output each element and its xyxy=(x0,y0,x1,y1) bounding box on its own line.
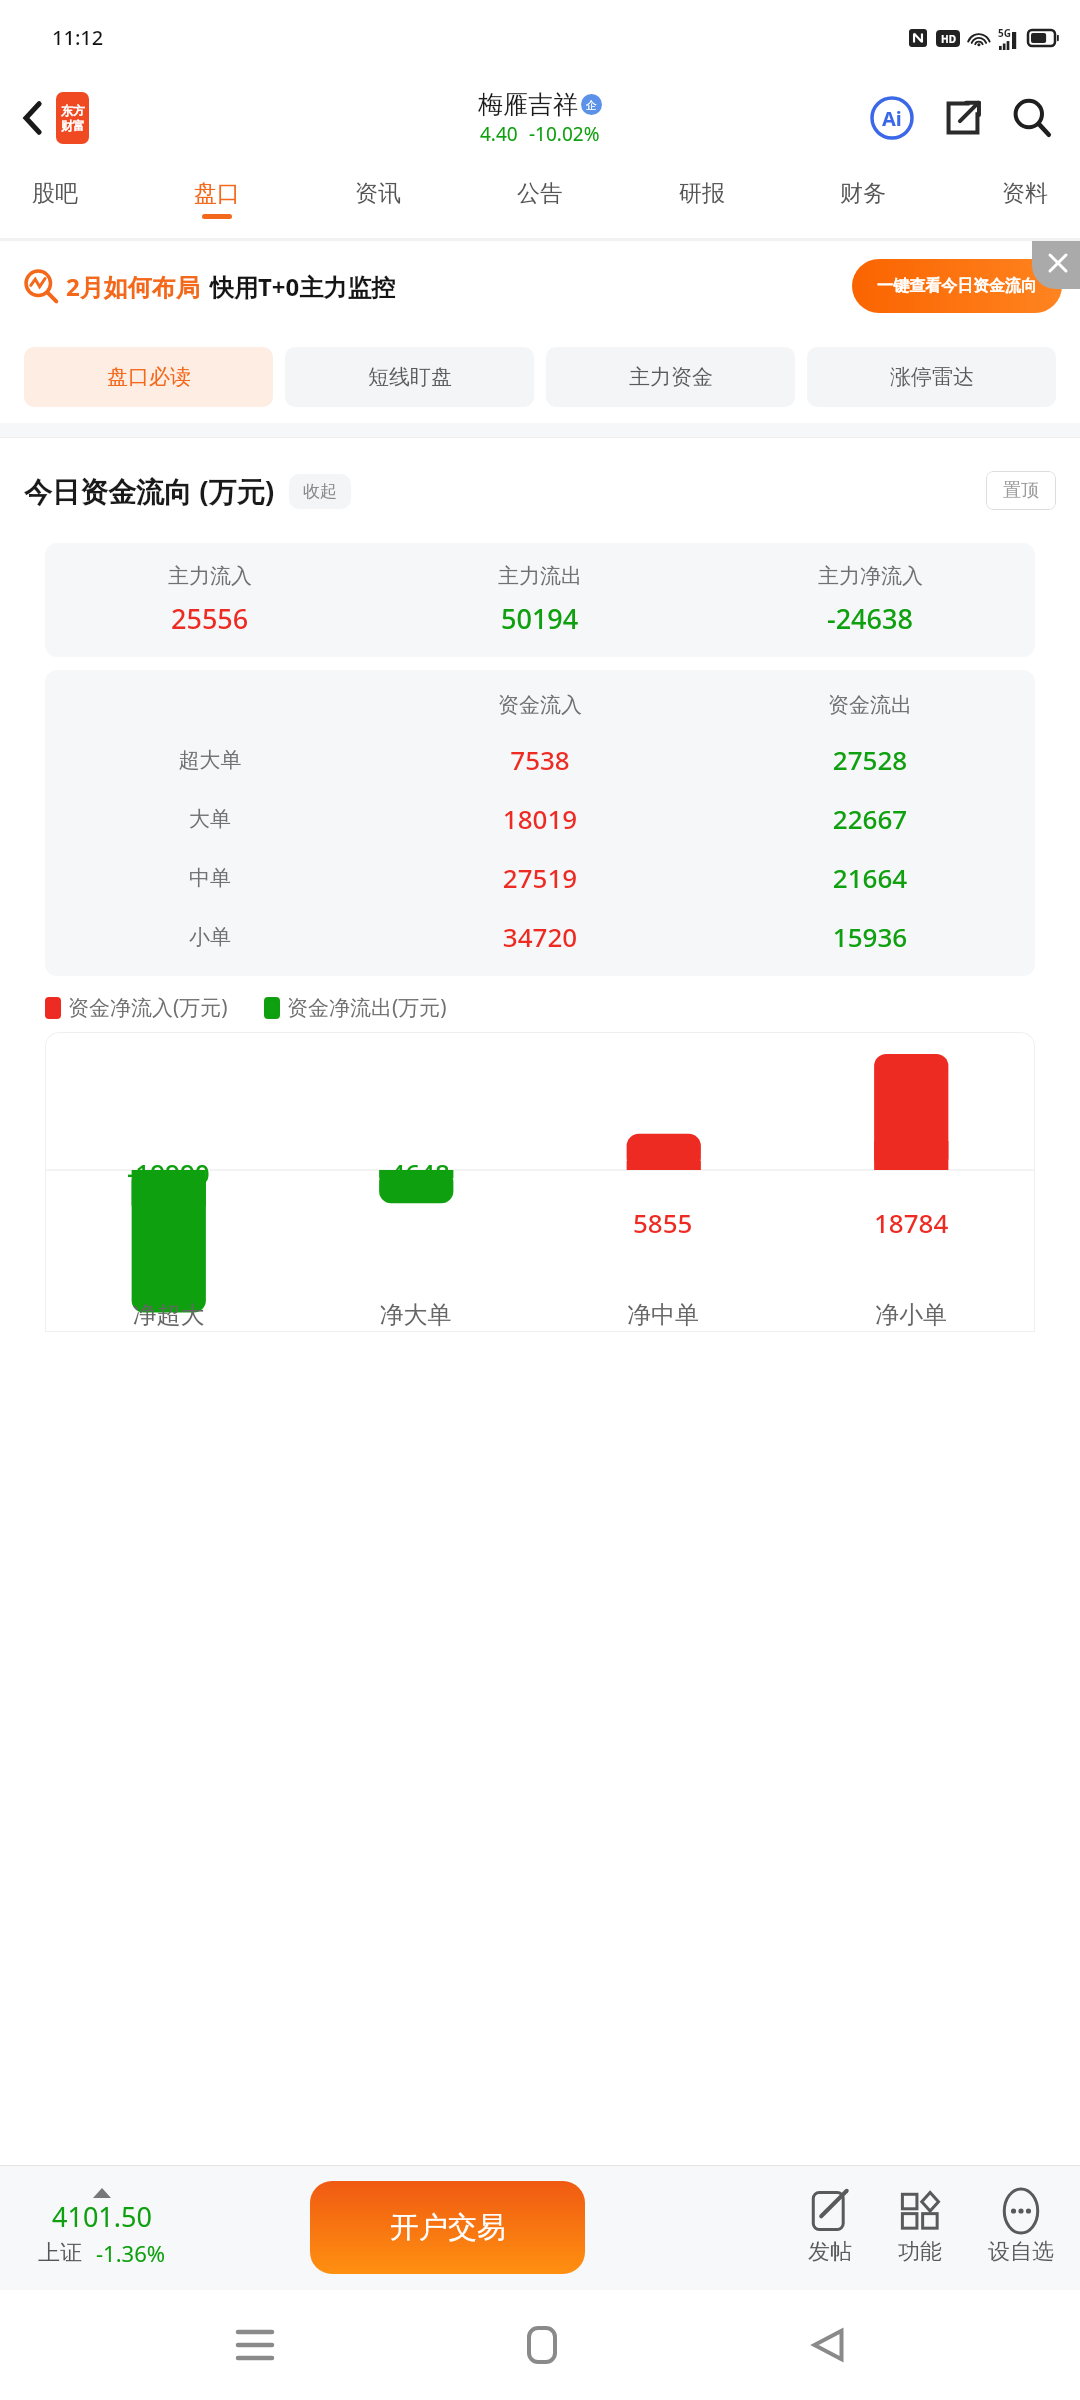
staticText: 5G xyxy=(998,26,1011,40)
staticText: -4648 xyxy=(382,1155,450,1190)
button[interactable]: 设自选 xyxy=(982,2185,1060,2270)
staticText: 资金净流入(万元) xyxy=(68,993,228,1022)
button[interactable]: 4101.50 xyxy=(38,2188,166,2268)
staticText: HD xyxy=(941,32,956,46)
staticText: 15936 xyxy=(705,919,1035,954)
staticText: 盘口 xyxy=(194,179,240,208)
staticText: 资金流入 xyxy=(375,692,705,718)
button[interactable]: 资讯 xyxy=(347,175,409,223)
staticText: 梅雁吉祥 xyxy=(478,89,578,120)
staticText: 主力流入 xyxy=(168,563,252,589)
staticText: 4101.50 xyxy=(52,2198,152,2235)
button[interactable]: Recents xyxy=(218,2312,292,2378)
staticText: 7538 xyxy=(375,742,705,777)
staticText: 50194 xyxy=(501,600,579,637)
button[interactable]: 开户交易 xyxy=(310,2181,585,2274)
staticText: 盘口必读 xyxy=(107,364,191,390)
staticText: 主力净流入 xyxy=(818,563,923,589)
button[interactable]: 涨停雷达 xyxy=(807,347,1056,407)
staticText: 25556 xyxy=(171,600,249,637)
button[interactable]: 研报 xyxy=(671,175,733,223)
staticText: 净超大 xyxy=(45,1300,292,1330)
staticText: 财务 xyxy=(840,179,886,208)
button[interactable]: 置顶 xyxy=(986,471,1056,510)
staticText: 资金流出 xyxy=(705,692,1035,718)
staticText: 涨停雷达 xyxy=(890,364,974,390)
staticText: 27519 xyxy=(375,860,705,895)
staticText: 置顶 xyxy=(1003,479,1039,502)
staticText: 小单 xyxy=(45,924,375,950)
button[interactable]: Back xyxy=(14,86,97,150)
staticText: 主力流出 xyxy=(498,563,582,589)
button[interactable]: Home xyxy=(509,2308,575,2382)
staticText: 中单 xyxy=(45,865,375,891)
button[interactable]: Back xyxy=(793,2308,863,2382)
staticText: 27528 xyxy=(705,742,1035,777)
staticText: 大单 xyxy=(45,806,375,832)
staticText: Ai xyxy=(882,105,902,132)
staticText: 短线盯盘 xyxy=(368,364,452,390)
staticText: 企 xyxy=(586,98,597,112)
button[interactable]: AI assistant xyxy=(864,90,920,146)
button[interactable]: 公告 xyxy=(509,175,571,223)
staticText: 34720 xyxy=(375,919,705,954)
button[interactable]: 一键查看今日资金流向 xyxy=(852,259,1062,313)
staticText: 资金净流出(万元) xyxy=(287,993,447,1022)
button[interactable]: 股吧 xyxy=(24,175,86,223)
staticText: 净大单 xyxy=(292,1300,539,1330)
staticText: -10.02% xyxy=(529,121,600,147)
staticText: 18019 xyxy=(375,801,705,836)
staticText: 功能 xyxy=(898,2238,942,2266)
staticText: 净小单 xyxy=(787,1300,1035,1330)
staticText: 上证 xyxy=(38,2239,82,2267)
button[interactable]: 2月如何布局 xyxy=(24,269,396,303)
staticText: 资料 xyxy=(1002,179,1048,208)
staticText: 公告 xyxy=(517,179,563,208)
staticText: 发帖 xyxy=(808,2238,852,2266)
staticText: 设自选 xyxy=(988,2238,1054,2266)
staticText: 净中单 xyxy=(539,1300,787,1330)
staticText: 开户交易 xyxy=(390,2209,506,2246)
button[interactable]: 资料 xyxy=(994,175,1056,223)
button[interactable]: Search xyxy=(1006,92,1058,144)
staticText: 11:12 xyxy=(52,24,104,51)
button[interactable]: 短线盯盘 xyxy=(285,347,534,407)
staticText: 资讯 xyxy=(355,179,401,208)
staticText: 21664 xyxy=(705,860,1035,895)
button[interactable]: 盘口 xyxy=(186,175,248,223)
button[interactable]: 功能 xyxy=(892,2185,948,2270)
staticText: 超大单 xyxy=(45,747,375,773)
staticText: 股吧 xyxy=(32,179,78,208)
button[interactable]: 主力资金 xyxy=(546,347,795,407)
staticText: 东方 xyxy=(61,103,85,118)
staticText: 研报 xyxy=(679,179,725,208)
staticText: 财富 xyxy=(61,118,85,133)
staticText: -19990 xyxy=(127,1155,210,1190)
button[interactable]: 收起 xyxy=(289,474,351,509)
button[interactable]: Close ad xyxy=(1032,241,1080,289)
staticText: -24638 xyxy=(827,600,913,637)
staticText: 主力资金 xyxy=(629,364,713,390)
staticText: 快用T+0主力监控 xyxy=(210,270,396,303)
staticText: 今日资金流向 (万元) xyxy=(24,472,275,510)
button[interactable]: 财务 xyxy=(832,175,894,223)
staticText: -1.36% xyxy=(96,2238,166,2268)
staticText: 收起 xyxy=(303,481,337,502)
staticText: 一键查看今日资金流向 xyxy=(877,276,1037,296)
button[interactable]: 盘口必读 xyxy=(24,347,273,407)
staticText: 22667 xyxy=(705,801,1035,836)
staticText: 4.40 xyxy=(480,121,518,147)
button[interactable]: 发帖 xyxy=(802,2185,858,2270)
staticText: 18784 xyxy=(874,1205,949,1240)
staticText: 2月如何布局 xyxy=(66,270,200,303)
button[interactable]: Share xyxy=(938,93,988,143)
staticText: 5855 xyxy=(633,1205,693,1240)
